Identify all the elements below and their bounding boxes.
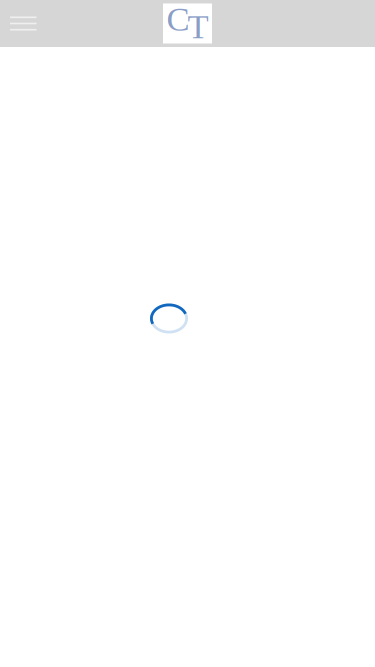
button[interactable]: Home (163, 3, 212, 43)
button[interactable]: Menu (0, 0, 48, 46)
staticText: T (187, 7, 208, 46)
staticText: C (166, 0, 189, 38)
